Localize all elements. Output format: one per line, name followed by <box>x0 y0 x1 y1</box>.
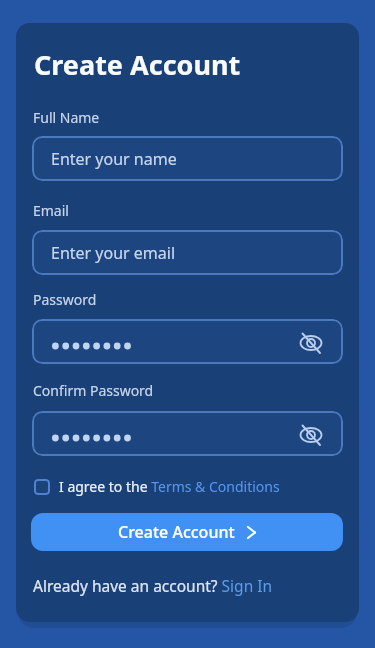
button[interactable]: Enter your email <box>32 230 343 275</box>
button[interactable]: Create Account <box>31 513 343 551</box>
staticText: Email <box>33 201 69 220</box>
staticText: Password <box>33 290 97 309</box>
button[interactable] <box>32 411 343 456</box>
button[interactable]: Enter your name <box>32 136 343 181</box>
staticText: Enter your name <box>51 148 177 170</box>
staticText: Create Account <box>34 46 241 83</box>
button[interactable]: Already have an account? Sign In <box>33 575 273 596</box>
button[interactable] <box>32 319 343 364</box>
staticText: Full Name <box>33 108 100 127</box>
staticText: I agree to the Terms & Conditions <box>59 477 280 496</box>
button[interactable]: I agree to the Terms & Conditions <box>34 477 280 496</box>
staticText: Confirm Password <box>33 381 154 400</box>
staticText: Create Account <box>118 521 235 543</box>
staticText: Enter your email <box>51 242 176 264</box>
